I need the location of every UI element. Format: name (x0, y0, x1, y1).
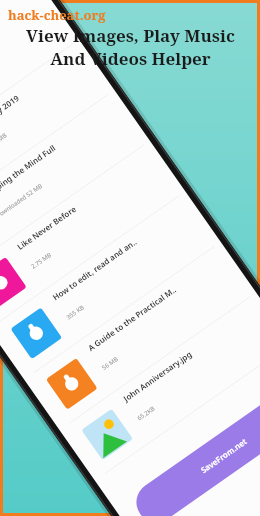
staticText: View Images, Play Music And Videos Helpe… (26, 24, 235, 70)
button[interactable]: hack-cheat.org (8, 6, 106, 24)
